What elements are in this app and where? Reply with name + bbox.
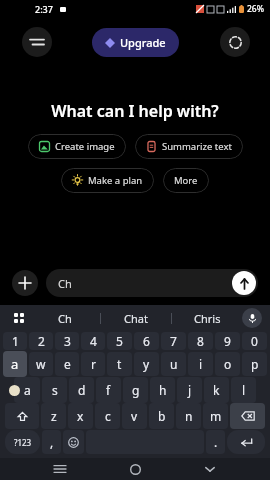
staticText: v: [131, 408, 138, 424]
button[interactable]: Enter: [227, 430, 265, 454]
staticText: d: [78, 382, 86, 398]
staticText: Upgrade: [120, 35, 166, 50]
button[interactable]: Summarize text: [135, 134, 243, 159]
button[interactable]: e: [55, 352, 79, 376]
staticText: Chris: [194, 311, 221, 326]
button[interactable]: 1: [3, 332, 27, 350]
button[interactable]: i: [188, 352, 213, 376]
button[interactable]: n: [176, 403, 201, 429]
button[interactable]: Back: [195, 458, 225, 480]
staticText: ,: [50, 434, 54, 450]
button[interactable]: Menu: [22, 27, 52, 57]
button[interactable]: ?123: [5, 430, 40, 454]
button[interactable]: .: [206, 430, 225, 454]
button[interactable]: ,: [42, 430, 61, 454]
staticText: w: [36, 356, 46, 372]
staticText: ?123: [14, 437, 32, 448]
button[interactable]: 9: [215, 332, 240, 350]
button[interactable]: z: [41, 403, 66, 429]
button[interactable]: 7: [161, 332, 186, 350]
button[interactable]: Home: [120, 458, 150, 480]
staticText: Chat: [124, 311, 148, 326]
button[interactable]: v: [122, 403, 147, 429]
staticText: j: [188, 382, 192, 398]
staticText: r: [91, 356, 96, 372]
button[interactable]: Chat: [101, 305, 171, 331]
staticText: t: [117, 356, 122, 372]
staticText: 9: [224, 333, 231, 349]
button[interactable]: 5: [107, 332, 132, 350]
staticText: u: [170, 356, 178, 372]
button[interactable]: y: [134, 352, 159, 376]
button[interactable]: Recents: [45, 458, 75, 480]
staticText: m: [210, 408, 222, 424]
button[interactable]: p: [242, 352, 267, 376]
button[interactable]: Voice input: [242, 308, 262, 328]
staticText: f: [106, 382, 111, 398]
button[interactable]: Emoji: [63, 430, 84, 454]
button[interactable]: g: [123, 377, 148, 403]
staticText: More: [174, 174, 198, 187]
button[interactable]: 4: [81, 332, 105, 350]
button[interactable]: a: [3, 352, 27, 376]
button[interactable]: 0: [242, 332, 267, 350]
button[interactable]: Ch: [46, 269, 258, 297]
staticText: 7: [170, 333, 177, 349]
staticText: What can I help with?: [0, 100, 270, 122]
button[interactable]: l: [231, 377, 256, 403]
button[interactable]: r: [81, 352, 105, 376]
button[interactable]: m: [203, 403, 228, 429]
button[interactable]: o: [215, 352, 240, 376]
staticText: 26%: [247, 3, 264, 15]
staticText: 2: [38, 333, 45, 349]
button[interactable]: 2: [29, 332, 53, 350]
button[interactable]: 8: [188, 332, 213, 350]
staticText: Make a plan: [88, 174, 143, 187]
button[interactable]: t: [107, 352, 132, 376]
button[interactable]: More: [163, 168, 209, 193]
button[interactable]: k: [204, 377, 229, 403]
button[interactable]: Make a plan: [61, 168, 154, 193]
button[interactable]: Backspace: [230, 403, 265, 429]
button[interactable]: w: [29, 352, 53, 376]
staticText: Ch: [58, 311, 72, 326]
button[interactable]: Send: [232, 271, 256, 295]
button[interactable]: Chris: [172, 305, 242, 331]
staticText: i: [199, 356, 203, 372]
button[interactable]: Create image: [28, 134, 126, 159]
staticText: h: [159, 382, 167, 398]
button[interactable]: Apps: [8, 307, 30, 329]
button[interactable]: Ch: [30, 305, 100, 331]
staticText: a: [24, 382, 31, 398]
staticText: Create image: [55, 140, 115, 153]
staticText: y: [143, 356, 150, 372]
staticText: 1: [12, 333, 19, 349]
button[interactable]: 6: [134, 332, 159, 350]
button[interactable]: f: [96, 377, 121, 403]
button[interactable]: 3: [55, 332, 79, 350]
button[interactable]: New chat: [220, 27, 250, 57]
button[interactable]: Add attachment: [12, 270, 38, 296]
staticText: 3: [64, 333, 71, 349]
staticText: s: [52, 382, 58, 398]
button[interactable]: x: [68, 403, 93, 429]
button[interactable]: b: [149, 403, 174, 429]
staticText: k: [213, 382, 220, 398]
staticText: z: [51, 408, 57, 424]
button[interactable]: d: [69, 377, 94, 403]
staticText: o: [224, 356, 232, 372]
button[interactable]: j: [177, 377, 202, 403]
staticText: a: [11, 355, 19, 373]
staticText: b: [158, 408, 166, 424]
button[interactable]: c: [95, 403, 120, 429]
button[interactable]: u: [161, 352, 186, 376]
staticText: 2:37: [35, 3, 53, 15]
button[interactable]: Shift: [5, 403, 39, 429]
button[interactable]: Upgrade: [92, 28, 179, 57]
staticText: 6: [143, 333, 150, 349]
staticText: l: [242, 382, 246, 398]
button[interactable]: h: [150, 377, 175, 403]
button[interactable]: s: [42, 377, 67, 403]
button[interactable]: a: [14, 377, 40, 403]
